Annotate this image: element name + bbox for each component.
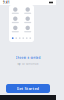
staticText: Tap to continue (17, 62, 39, 65)
button[interactable]: Contact (10, 25, 21, 33)
staticText: Choose a contact (15, 56, 40, 59)
button[interactable]: Contact (22, 16, 33, 24)
button[interactable]: Contact (22, 25, 33, 33)
button[interactable]: Contact (10, 7, 21, 15)
staticText: Get Started (16, 86, 39, 91)
staticText: 9:41 (3, 1, 10, 4)
button[interactable]: Contact (22, 7, 33, 15)
button[interactable]: Get Started (6, 84, 50, 93)
button[interactable]: Contact (10, 16, 21, 24)
